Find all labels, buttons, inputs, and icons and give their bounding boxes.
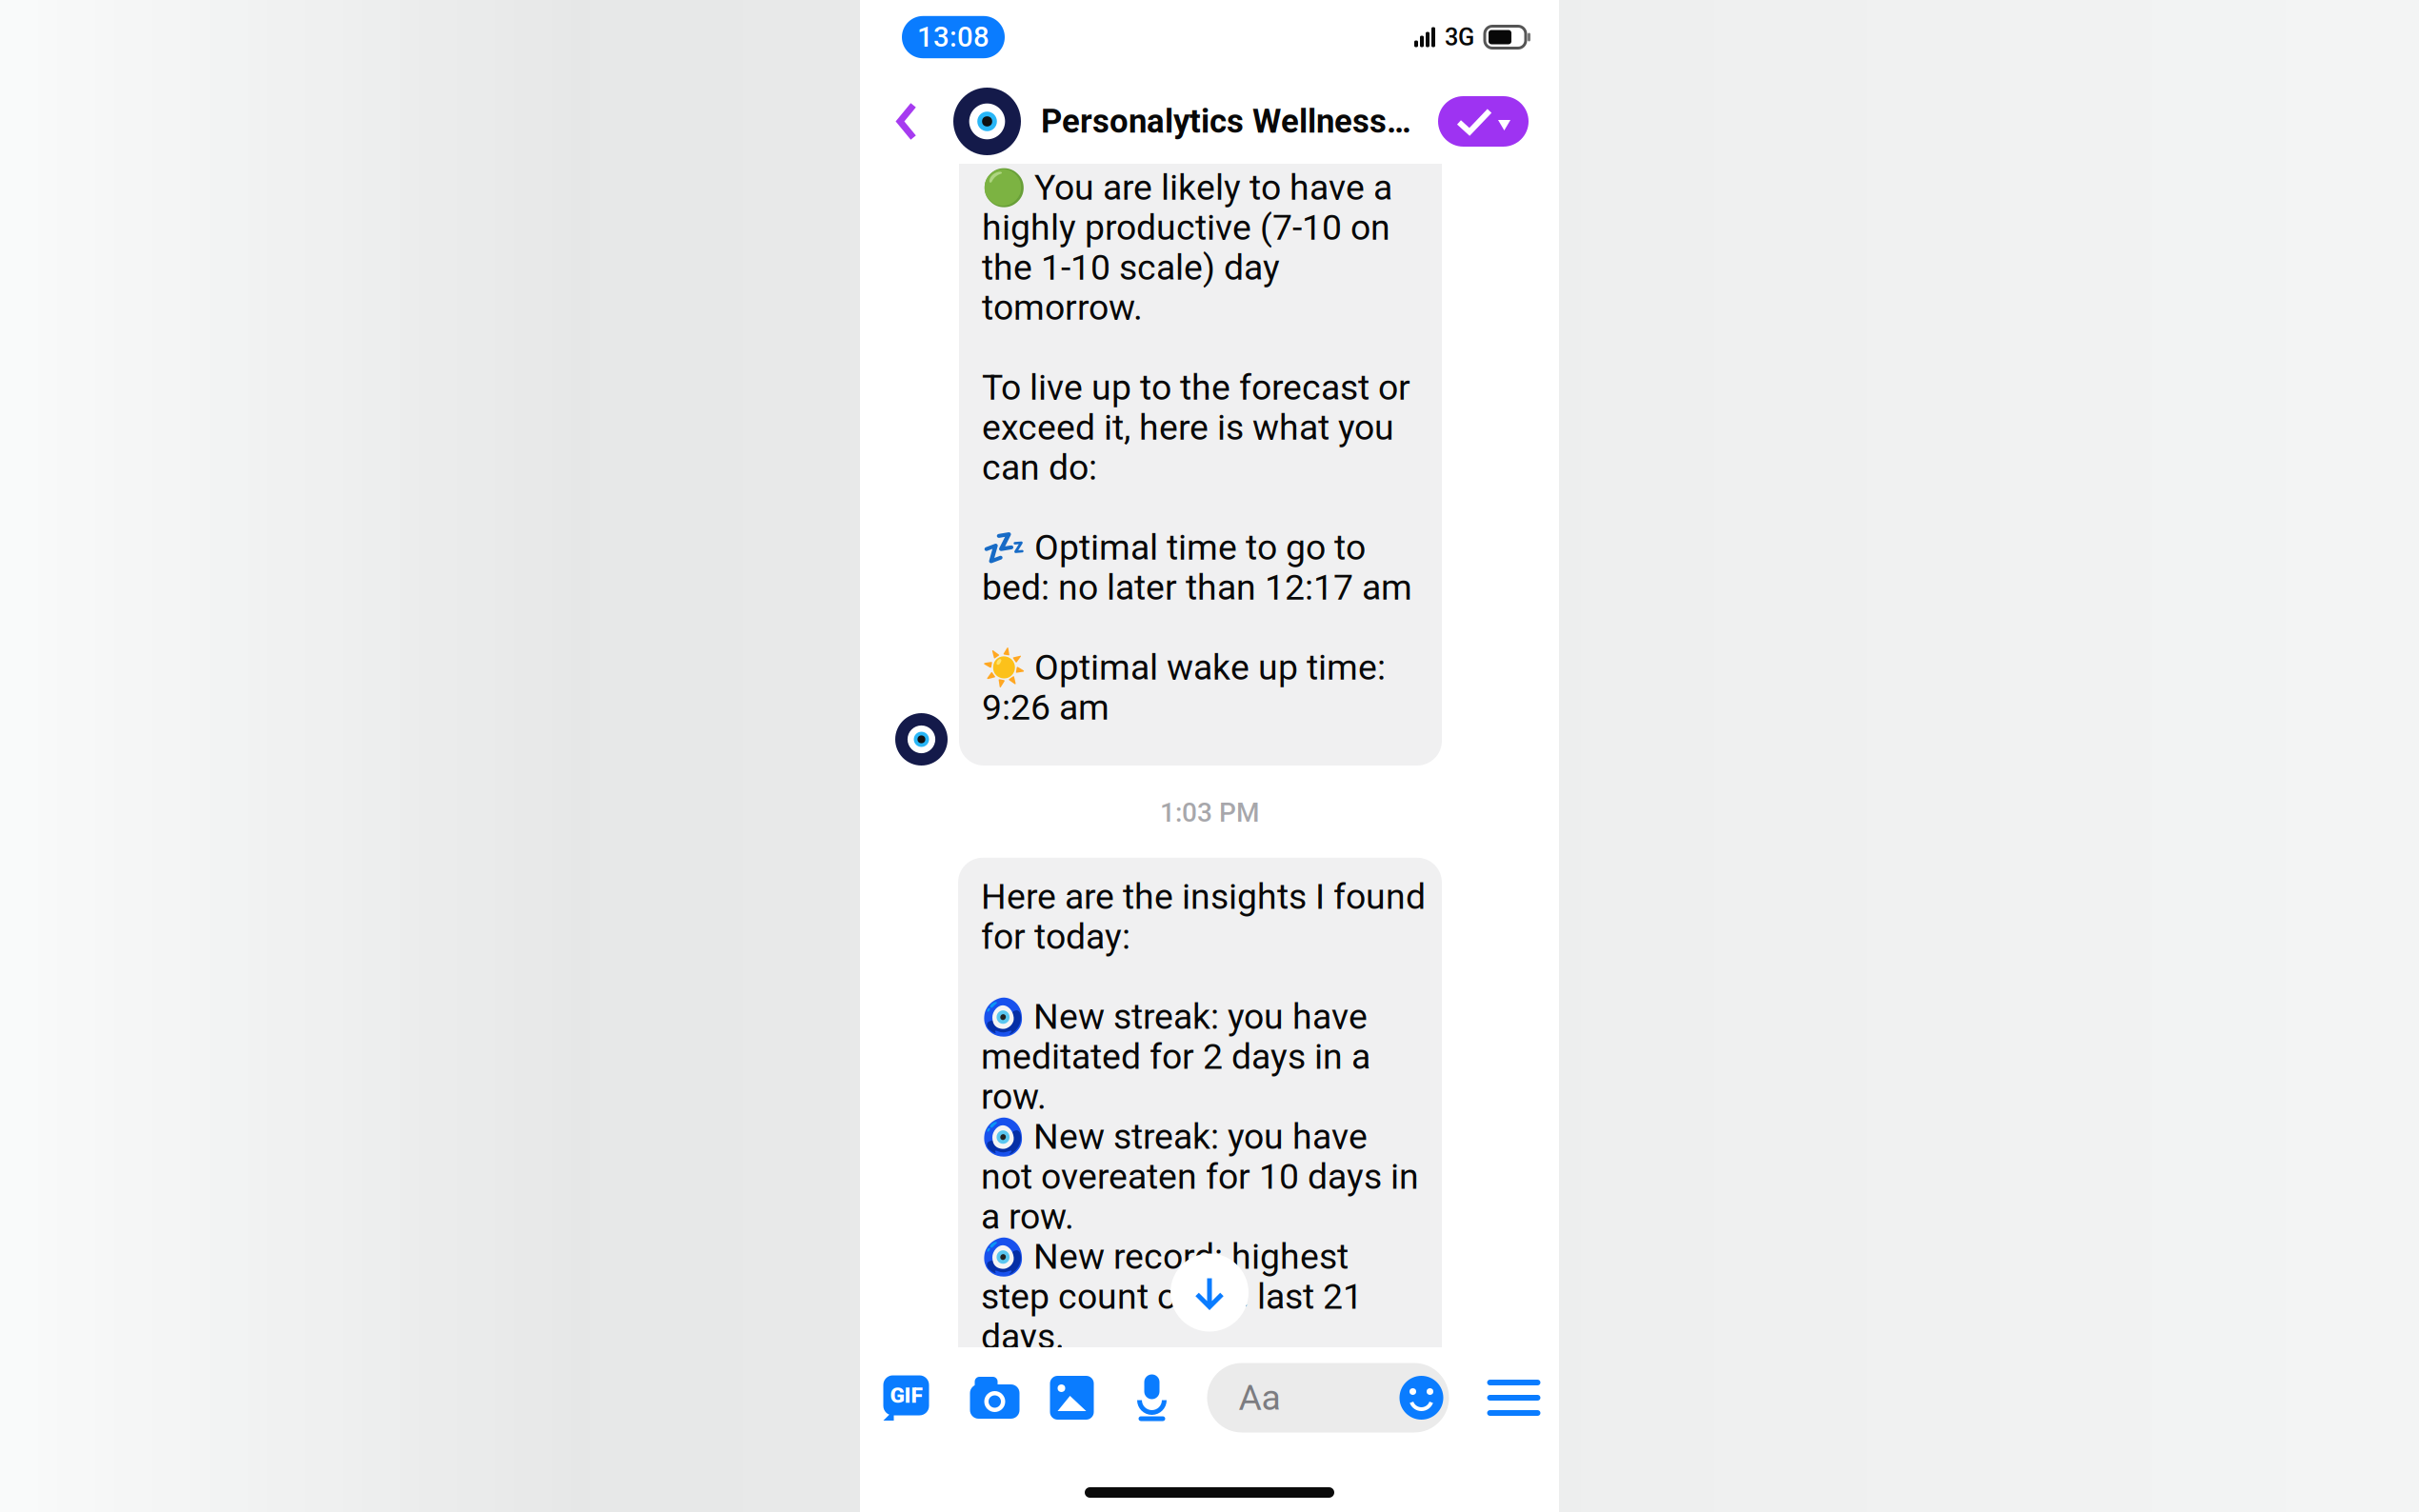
button[interactable]: Here are the insights I found [958, 858, 1442, 1374]
staticText: 🧿 New streak: you have [981, 996, 1368, 1037]
button[interactable]: Mark as done [1438, 96, 1529, 147]
staticText: ☀️ Optimal wake up time: [982, 647, 1386, 688]
staticText: 🟢 You are likely to have a [982, 167, 1392, 208]
button[interactable]: More [1486, 1380, 1541, 1416]
button[interactable]: Message input [1207, 1363, 1449, 1432]
staticText: 13:08 [917, 21, 990, 54]
button[interactable]: Scroll to latest message [1170, 1253, 1249, 1332]
staticText: days. [981, 1316, 1065, 1357]
staticText: GIF [890, 1383, 922, 1408]
staticText: 🧿 New streak: you have [981, 1116, 1368, 1157]
staticText: 3G [1445, 23, 1474, 51]
staticText: To live up to the forecast or [982, 367, 1410, 408]
staticText: not overeaten for 10 days in [981, 1156, 1419, 1197]
staticText: 🧿 New record: highest [981, 1236, 1349, 1277]
staticText: Personalytics Wellness… [1041, 102, 1411, 141]
button[interactable]: GIF [882, 1375, 930, 1421]
staticText: tomorrow. [982, 287, 1143, 328]
staticText: step count of the last 21 [981, 1276, 1363, 1317]
staticText: 9:26 am [982, 687, 1110, 728]
button[interactable]: 🟢 You are likely to have a [959, 128, 1442, 766]
button[interactable]: Photos [1050, 1376, 1094, 1420]
staticText: Here are the insights I found [981, 876, 1426, 917]
staticText: highly productive (7-10 on [982, 207, 1390, 248]
staticText: 💤 Optimal time to go to [982, 527, 1366, 568]
staticText: Aa [1239, 1377, 1280, 1418]
button[interactable]: Personalytics Wellness… [953, 88, 1411, 155]
staticText: 1:03 PM [1160, 797, 1259, 828]
staticText: row. [981, 1076, 1047, 1117]
staticText: meditated for 2 days in a [981, 1036, 1370, 1077]
staticText: can do: [982, 447, 1097, 488]
staticText: a row. [981, 1196, 1074, 1237]
staticText: bed: no later than 12:17 am [982, 567, 1412, 608]
staticText: the 1-10 scale) day [982, 247, 1280, 288]
staticText: exceed it, here is what you [982, 407, 1394, 448]
button[interactable]: Voice message [1136, 1373, 1168, 1422]
staticText: for today: [981, 916, 1130, 957]
button[interactable]: Camera [969, 1376, 1020, 1420]
button[interactable]: Back [895, 101, 953, 141]
